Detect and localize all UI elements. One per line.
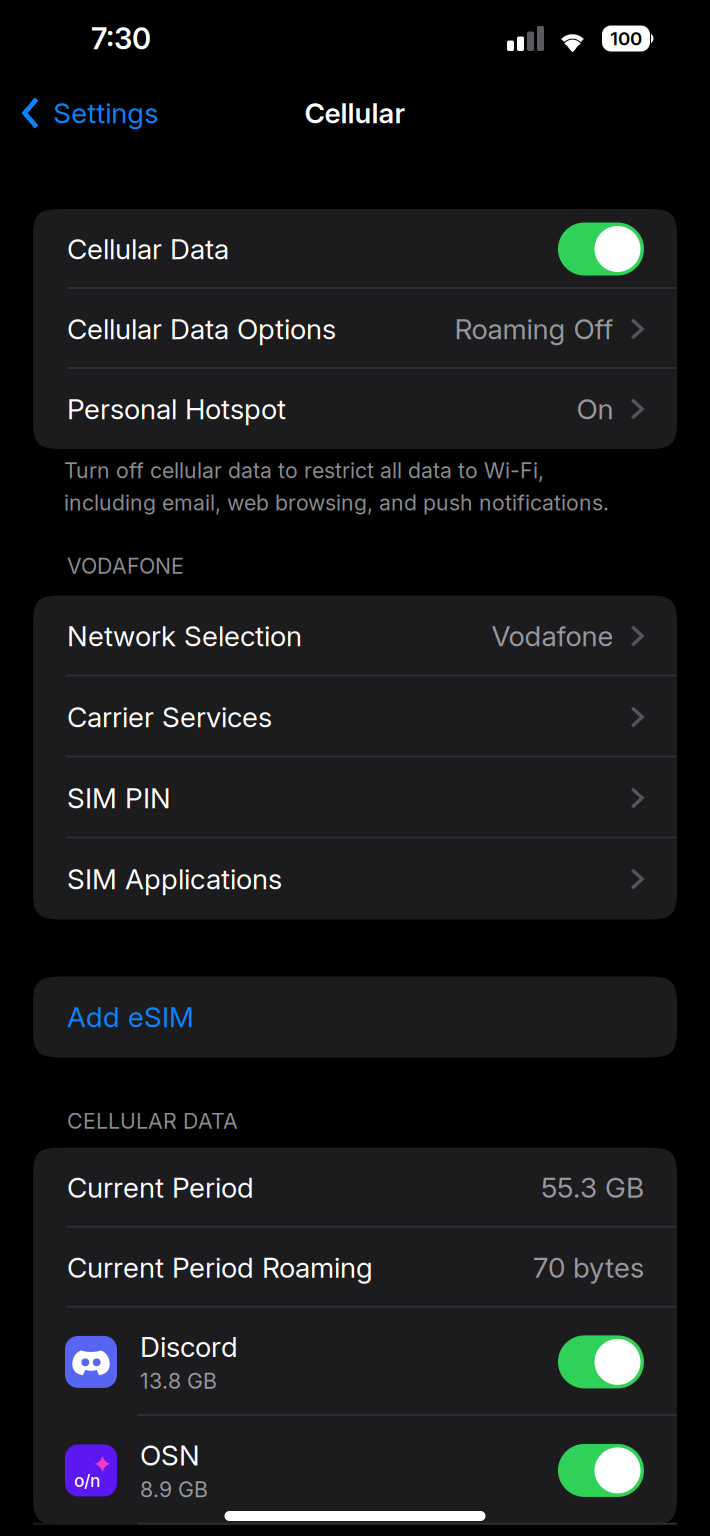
staticText: 8.9 GB [140, 1477, 208, 1502]
button[interactable]: SIM Applications [33, 838, 677, 919]
button[interactable]: Discord [33, 1308, 677, 1416]
staticText: SIM Applications [67, 862, 282, 895]
button[interactable]: Carrier Services [33, 676, 677, 757]
staticText: 70 bytes [533, 1251, 644, 1284]
button[interactable]: Settings [0, 77, 172, 149]
staticText: o/n [74, 1470, 100, 1491]
staticText: Turn off cellular data to restrict all d… [64, 458, 609, 515]
staticText: 13.8 GB [140, 1368, 217, 1394]
button[interactable]: Current Period Roaming [33, 1228, 677, 1308]
staticText: Vodafone [491, 619, 613, 652]
staticText: SIM PIN [67, 781, 171, 814]
button[interactable]: Network Selection [33, 595, 677, 676]
button[interactable]: Cellular Data Options [33, 289, 677, 369]
staticText: Roaming Off [454, 312, 613, 345]
staticText: Discord [140, 1330, 238, 1363]
staticText: On [576, 392, 613, 425]
staticText: 7:30 [91, 21, 151, 56]
staticText: Personal Hotspot [67, 392, 286, 425]
button[interactable]: o/n [33, 1416, 677, 1525]
button[interactable]: SIM PIN [33, 757, 677, 838]
staticText: 55.3 GB [541, 1171, 644, 1204]
staticText: Cellular [304, 96, 405, 129]
staticText: Cellular Data Options [67, 312, 336, 345]
staticText: Cellular Data [67, 232, 229, 265]
staticText: CELLULAR DATA [67, 1108, 238, 1134]
button[interactable]: Current Period [33, 1148, 677, 1228]
staticText: Add eSIM [67, 1000, 194, 1033]
button[interactable]: Cellular Data [33, 209, 677, 289]
staticText: Settings [53, 96, 158, 129]
staticText: Current Period [67, 1171, 254, 1204]
staticText: VODAFONE [67, 553, 184, 578]
staticText: OSN [140, 1439, 200, 1472]
button[interactable]: Add eSIM [33, 976, 677, 1057]
button[interactable]: Personal Hotspot [33, 369, 677, 449]
staticText: Carrier Services [67, 700, 272, 733]
staticText: Network Selection [67, 619, 302, 652]
staticText: Current Period Roaming [67, 1251, 373, 1284]
staticText: 100 [610, 27, 642, 49]
